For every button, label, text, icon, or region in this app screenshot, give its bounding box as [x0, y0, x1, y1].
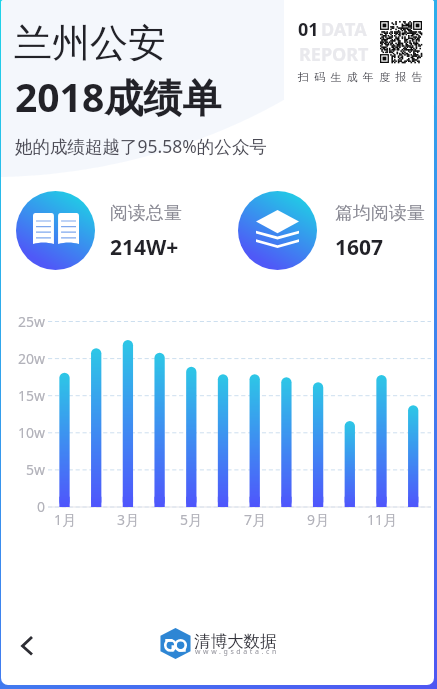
staticText: 扫码生成年度报告 [298, 70, 428, 84]
button[interactable]: 阅读总量 [16, 191, 95, 270]
staticText: 5w [11, 460, 45, 479]
staticText: 篇均阅读量 [335, 202, 425, 225]
staticText: 25w [11, 312, 45, 331]
staticText: 清博大数据 [194, 631, 277, 652]
button[interactable]: 扫码生成年度报告 [284, 0, 434, 105]
staticText: 11月 [362, 510, 402, 529]
staticText: 9月 [298, 510, 338, 529]
staticText: 1月 [45, 510, 85, 529]
staticText: 1607 [335, 233, 384, 262]
staticText: 她的成绩超越了95.58%的公众号 [15, 134, 267, 158]
staticText: 10w [11, 423, 45, 442]
staticText: 5月 [171, 510, 211, 529]
staticText: 阅读总量 [110, 202, 182, 225]
staticText: www.gsdata.cn [195, 647, 279, 657]
staticText: 0 [11, 497, 45, 516]
staticText: 2018成绩单 [15, 70, 222, 123]
button[interactable]: Back [12, 626, 52, 666]
staticText: 3月 [108, 510, 148, 529]
staticText: 01 [298, 17, 319, 42]
staticText: 兰州公安 [14, 19, 166, 67]
staticText: REPORT [299, 42, 369, 67]
staticText: 7月 [235, 510, 275, 529]
staticText: 214W+ [110, 233, 179, 262]
staticText: 20w [11, 349, 45, 368]
staticText: DATA [321, 17, 367, 42]
staticText: 15w [11, 386, 45, 405]
button[interactable]: 篇均阅读量 [238, 191, 317, 270]
button[interactable] [160, 628, 191, 659]
